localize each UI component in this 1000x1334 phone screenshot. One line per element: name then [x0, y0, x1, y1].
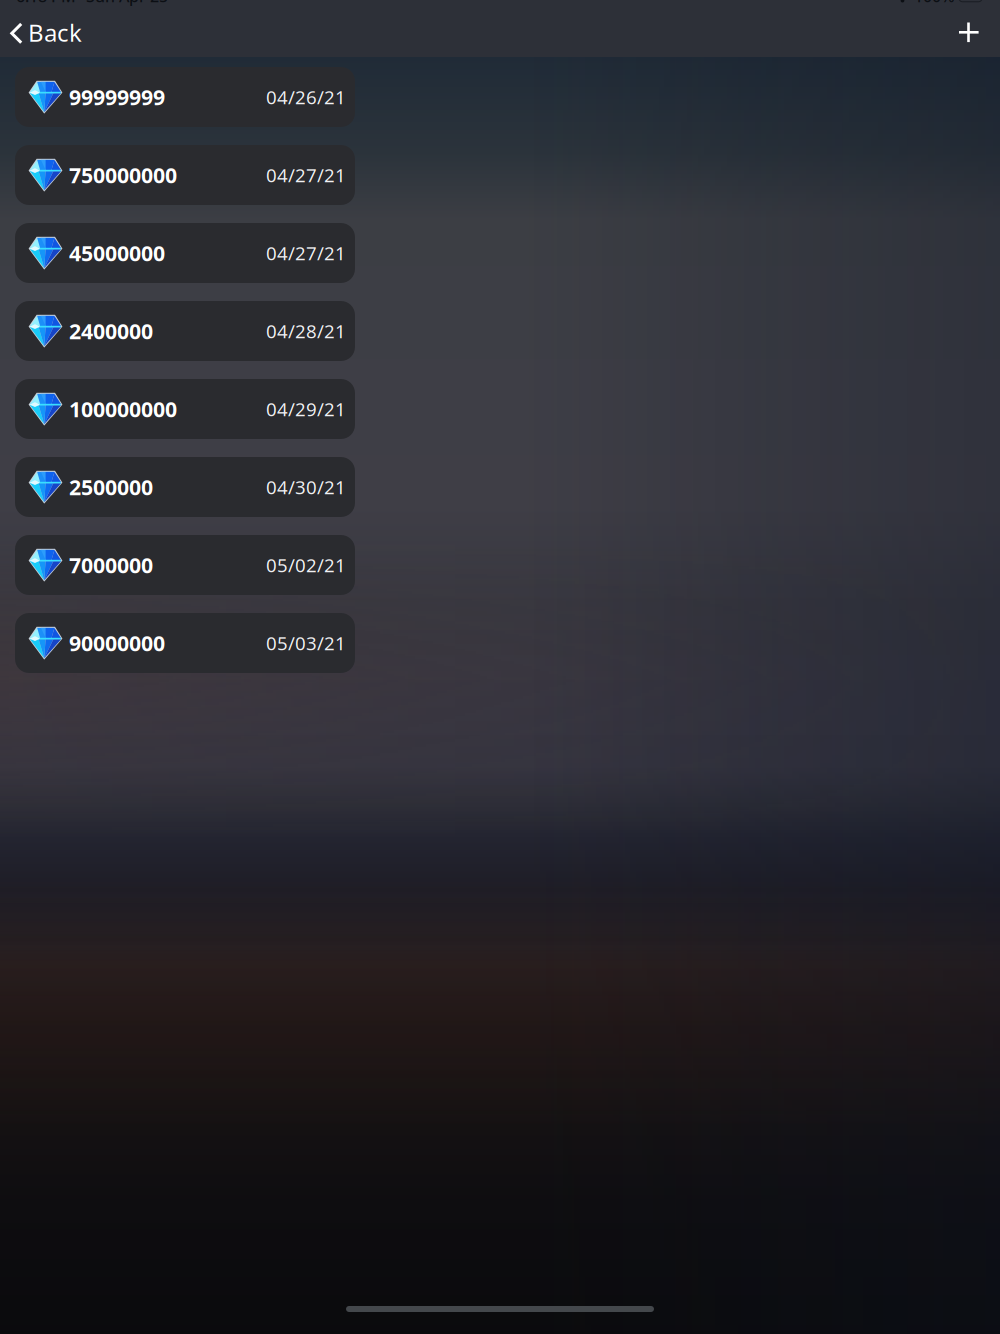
staticText: 2500000 — [69, 473, 153, 501]
button[interactable]: Back — [0, 10, 96, 54]
staticText: 100% — [914, 0, 955, 7]
staticText: 04/30/21 — [266, 475, 346, 499]
staticText: 6:18 PM — [16, 0, 76, 7]
staticText: 04/28/21 — [266, 319, 346, 343]
staticText: 04/29/21 — [266, 397, 346, 421]
staticText: 90000000 — [69, 629, 165, 657]
staticText: 04/27/21 — [266, 241, 346, 265]
staticText: 05/02/21 — [266, 553, 346, 577]
button[interactable]: 45000000 — [15, 223, 355, 283]
button[interactable]: 2400000 — [15, 301, 355, 361]
staticText: 45000000 — [69, 239, 165, 267]
staticText: Sun Apr 25 — [86, 0, 168, 7]
staticText: 750000000 — [69, 161, 177, 189]
button[interactable]: 750000000 — [15, 145, 355, 205]
staticText: 2400000 — [69, 317, 153, 345]
staticText: 04/27/21 — [266, 163, 346, 187]
button[interactable]: 100000000 — [15, 379, 355, 439]
staticText: Back — [28, 17, 82, 48]
button[interactable]: Add — [943, 10, 1000, 54]
staticText: 05/03/21 — [266, 631, 346, 655]
button[interactable]: 99999999 — [15, 67, 355, 127]
button[interactable]: 7000000 — [15, 535, 355, 595]
button[interactable]: 2500000 — [15, 457, 355, 517]
staticText: 04/26/21 — [266, 85, 346, 109]
staticText: 7000000 — [69, 551, 153, 579]
staticText: 100000000 — [69, 395, 177, 423]
button[interactable]: 90000000 — [15, 613, 355, 673]
staticText: 99999999 — [69, 83, 165, 111]
